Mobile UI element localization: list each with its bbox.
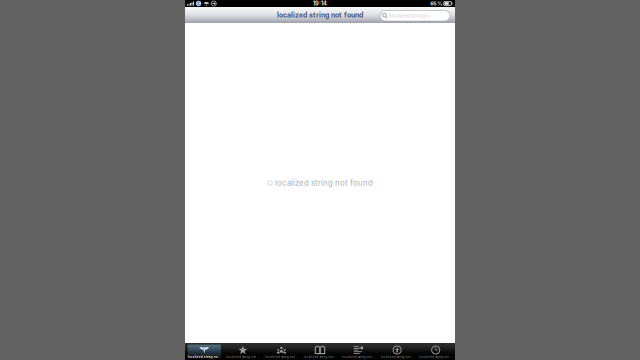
button[interactable]: localized string not found [416, 343, 455, 360]
button[interactable]: localized string not found [378, 343, 416, 360]
staticText: 19:14 [313, 0, 327, 7]
button[interactable]: localized string not found [301, 343, 339, 360]
staticText: localized string not found [342, 355, 375, 359]
staticText: localized string not found [226, 355, 259, 359]
button[interactable]: localized string not found [339, 343, 378, 360]
button[interactable]: localized string not found [224, 343, 262, 360]
staticText: localized string not found [381, 355, 414, 359]
staticText: localized string not found [419, 355, 452, 359]
button[interactable]: Search [380, 10, 450, 20]
staticText: localized string not found [275, 178, 373, 188]
button[interactable]: localized string not found [185, 343, 224, 360]
staticText: localized string not found [389, 13, 435, 19]
staticText: localized string not found [188, 355, 221, 359]
staticText: localized string not found [277, 11, 363, 19]
staticText: localized string not found [265, 355, 298, 359]
staticText: 65 % [430, 0, 442, 7]
staticText: localized string not found [303, 355, 336, 359]
button[interactable]: localized string not found [262, 343, 301, 360]
